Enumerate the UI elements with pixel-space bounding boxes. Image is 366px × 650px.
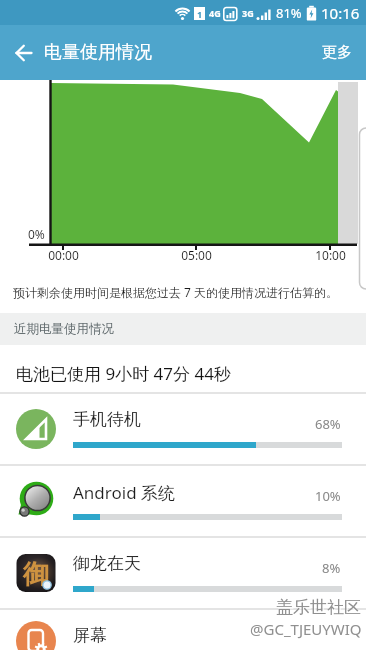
staticText: 盖乐世社区 xyxy=(276,597,361,618)
button[interactable]: 手机待机 xyxy=(0,392,366,464)
button[interactable]: Android 系统 xyxy=(0,464,366,536)
staticText: 御 xyxy=(23,558,49,591)
staticText: 电池已使用 9小时 47分 44秒 xyxy=(16,362,231,385)
staticText: 10:16 xyxy=(321,3,360,23)
staticText: 屏幕 xyxy=(73,625,107,646)
staticText: 81% xyxy=(276,4,302,22)
staticText: 05:00 xyxy=(181,247,212,263)
button[interactable] xyxy=(6,35,42,71)
staticText: 0% xyxy=(28,226,45,242)
staticText: 68% xyxy=(315,415,341,433)
staticText: 1 xyxy=(197,8,203,20)
button[interactable]: 更多 xyxy=(308,33,366,72)
staticText: 3G xyxy=(242,7,254,19)
staticText: 4G xyxy=(209,7,221,19)
staticText: 电量使用情况 xyxy=(44,41,152,64)
staticText: 更多 xyxy=(322,43,352,62)
staticText: 手机待机 xyxy=(73,409,141,430)
staticText: 8% xyxy=(322,559,341,577)
button[interactable]: 屏幕 xyxy=(0,608,366,650)
staticText: 10% xyxy=(315,487,341,505)
staticText: 御龙在天 xyxy=(73,553,141,574)
staticText: Android 系统 xyxy=(73,481,176,504)
staticText: 预计剩余使用时间是根据您过去 7 天的使用情况进行估算的。 xyxy=(13,284,339,300)
button[interactable]: 御 xyxy=(0,536,366,608)
staticText: @GC_TJEUYWIQ xyxy=(250,619,362,639)
staticText: 00:00 xyxy=(48,247,79,263)
staticText: 10:00 xyxy=(315,247,346,263)
staticText: 近期电量使用情况 xyxy=(14,321,114,337)
